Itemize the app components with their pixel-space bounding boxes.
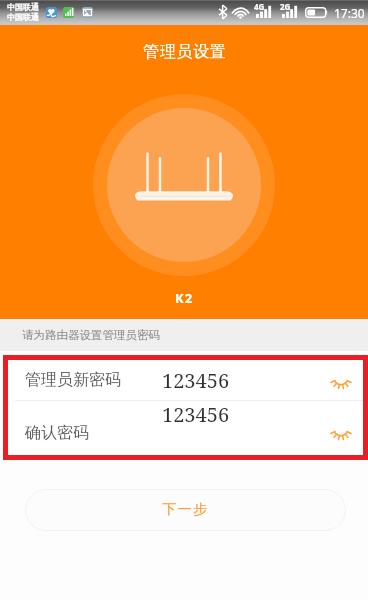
staticText: 17:30 [334,5,365,21]
staticText: 请为路由器设置管理员密码 [22,328,160,342]
staticText: 中国联通 [7,2,39,12]
staticText: K2 [175,289,194,307]
staticText: 确认密码 [25,423,89,443]
button[interactable]: 确认密码 [8,401,363,455]
staticText: 123456 [162,401,230,428]
button[interactable]: 管理员新密码 [8,360,363,400]
button[interactable]: 下一步 [25,489,346,531]
staticText: 下一步 [162,501,209,519]
staticText: 中国联通 [7,12,39,22]
button[interactable]: Toggle new password visibility [323,363,359,399]
staticText: 管理员设置 [143,42,226,62]
staticText: 123456 [162,367,230,394]
staticText: 2G [280,1,291,12]
staticText: 管理员新密码 [25,370,121,390]
staticText: 4G [254,1,265,12]
button[interactable]: Toggle confirm password visibility [323,414,359,450]
